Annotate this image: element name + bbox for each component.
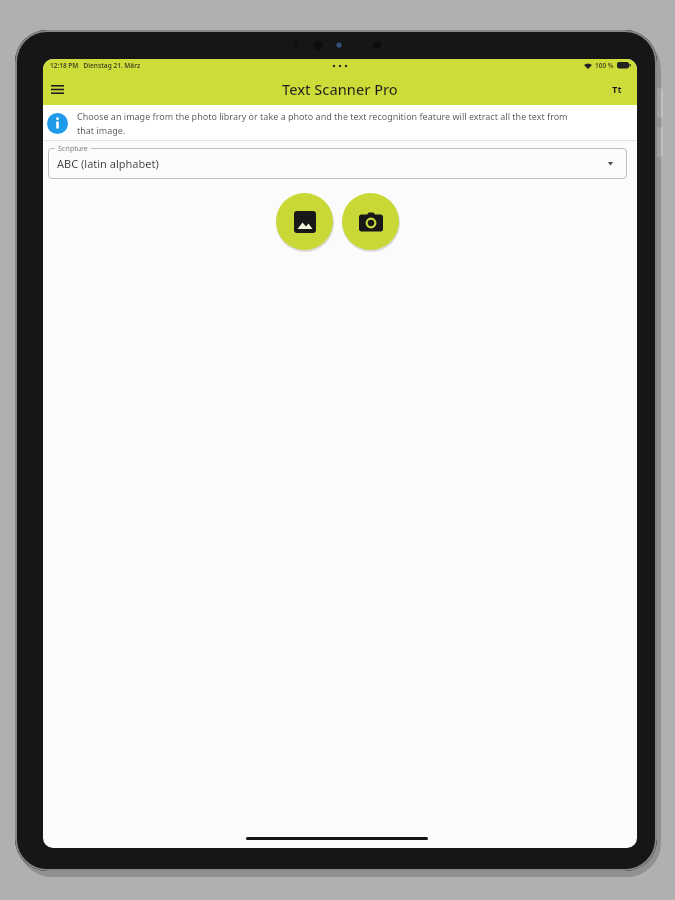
button[interactable]: Tt	[607, 79, 627, 99]
button[interactable]: ABC (latin alphabet)	[48, 148, 627, 179]
staticText: Scripture	[58, 144, 88, 154]
button[interactable]	[342, 193, 399, 250]
button[interactable]	[276, 193, 333, 250]
staticText: Tt	[612, 83, 622, 96]
staticText: that image.	[77, 124, 126, 136]
staticText: 12:18 PM Dienstag 21. März	[50, 61, 141, 70]
staticText: ABC (latin alphabet)	[57, 156, 159, 171]
button[interactable]	[46, 78, 68, 100]
staticText: 100 %	[595, 61, 614, 70]
staticText: Choose an image from the photo library o…	[77, 110, 568, 122]
staticText: Text Scanner Pro	[282, 79, 398, 99]
